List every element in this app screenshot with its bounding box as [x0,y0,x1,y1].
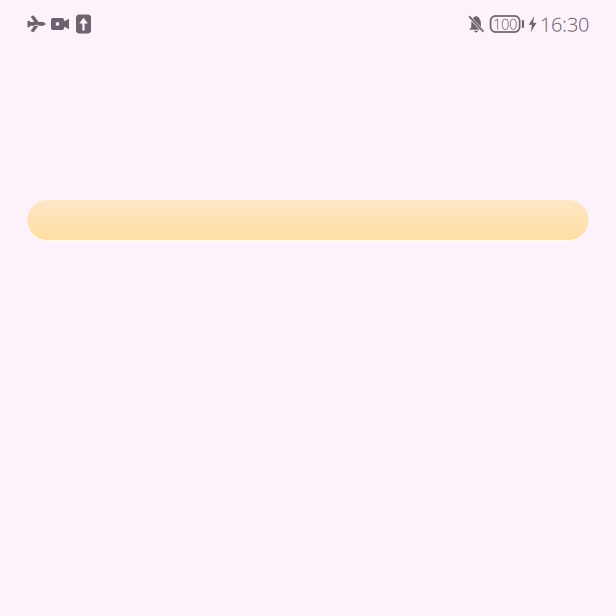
button[interactable]: Loading [27,200,588,240]
staticText: 100 [493,14,517,34]
staticText: 16:30 [540,11,589,37]
